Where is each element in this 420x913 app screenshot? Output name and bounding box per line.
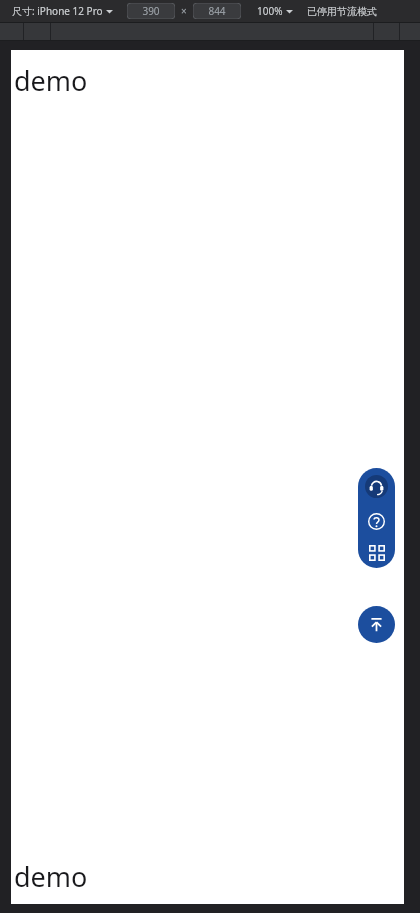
button[interactable]: QR code xyxy=(358,538,395,568)
button[interactable]: Help xyxy=(358,504,395,538)
button[interactable]: Back to top xyxy=(358,606,395,643)
staticText: 844 xyxy=(208,4,226,18)
button[interactable]: 100% xyxy=(255,2,295,20)
button[interactable]: 844 xyxy=(193,3,241,19)
staticText: 390 xyxy=(142,4,160,18)
staticText: 100% xyxy=(257,4,283,18)
staticText: demo xyxy=(14,62,88,99)
staticText: 尺寸: iPhone 12 Pro xyxy=(12,4,103,18)
staticText: demo xyxy=(14,858,88,895)
staticText: × xyxy=(181,4,187,18)
staticText: 已停用节流模式 xyxy=(307,5,377,18)
button[interactable]: 已停用节流模式 xyxy=(307,3,377,20)
button[interactable]: Customer service xyxy=(358,468,395,504)
button[interactable]: 390 xyxy=(127,3,175,19)
button[interactable]: 尺寸: iPhone 12 Pro xyxy=(10,2,115,20)
